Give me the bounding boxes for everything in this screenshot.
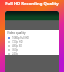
button[interactable]: 720p HD (6, 40, 59, 44)
button[interactable]: 360p (6, 48, 59, 52)
staticText: 1080p Full HD (12, 36, 29, 40)
staticText: 720p HD (12, 40, 23, 44)
button[interactable]: 480p SD (6, 44, 59, 48)
staticText: 480p SD (12, 44, 23, 48)
button[interactable]: 1080p Full HD (6, 36, 59, 40)
button[interactable]: 240p (6, 52, 59, 55)
staticText: Full HD Recording Quality (2, 1, 62, 7)
staticText: Video quality (7, 31, 26, 35)
staticText: 240p (12, 52, 19, 55)
staticText: 360p (12, 48, 19, 52)
